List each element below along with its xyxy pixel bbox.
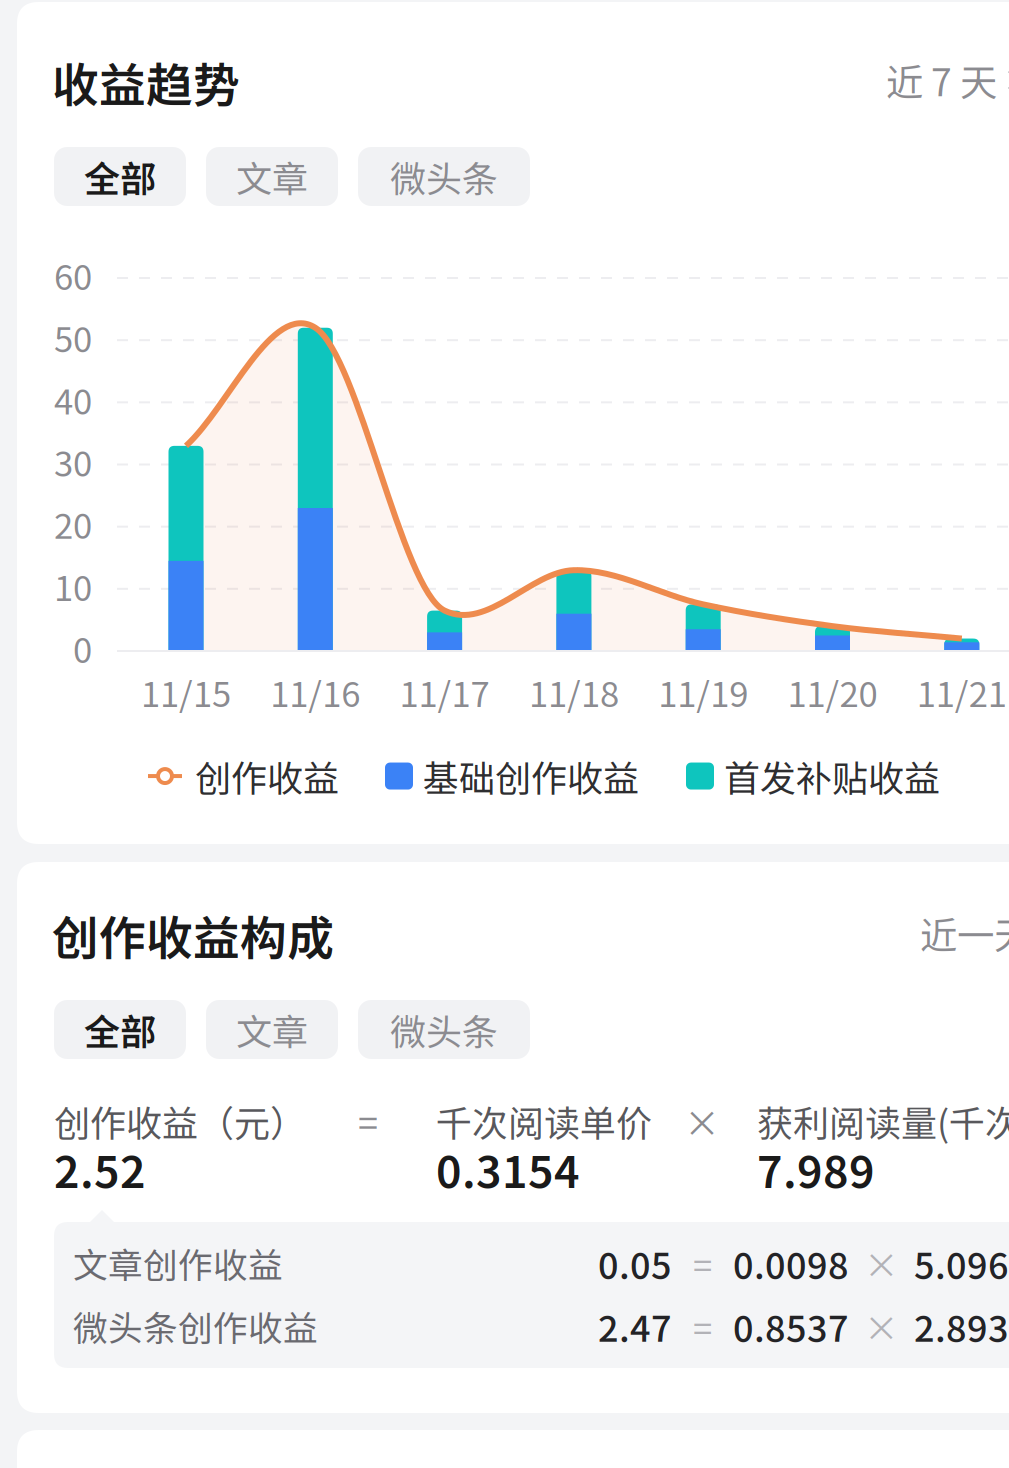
staticText: 收益趋势 bbox=[52, 48, 240, 116]
staticText: 文章 bbox=[236, 1003, 308, 1055]
staticText: 微头条 bbox=[390, 150, 498, 202]
staticText: 40 bbox=[54, 374, 92, 424]
staticText: 11/15 bbox=[141, 667, 231, 717]
button[interactable]: 近 7 天 bbox=[886, 53, 1009, 107]
button[interactable]: 近一天 bbox=[920, 906, 1009, 960]
staticText: 创作收益（元） bbox=[54, 1095, 306, 1147]
staticText: 基础创作收益 bbox=[423, 750, 639, 802]
staticText: 7.989 bbox=[757, 1137, 875, 1201]
staticText: 60 bbox=[54, 250, 92, 300]
staticText: 0 bbox=[73, 623, 92, 673]
staticText: × bbox=[864, 1238, 899, 1288]
staticText: 11/17 bbox=[400, 667, 490, 717]
staticText: 文章创作收益 bbox=[73, 1238, 283, 1288]
staticText: 2.893 bbox=[914, 1300, 1009, 1352]
staticText: 全部 bbox=[84, 1003, 156, 1055]
staticText: 5.096 bbox=[914, 1237, 1009, 1289]
staticText: 千次阅读单价 bbox=[436, 1095, 652, 1147]
staticText: 50 bbox=[54, 312, 92, 362]
staticText: 近一天 bbox=[920, 906, 1009, 960]
staticText: 11/16 bbox=[270, 667, 360, 717]
staticText: 首发补贴收益 bbox=[724, 750, 940, 802]
staticText: = bbox=[358, 1095, 378, 1147]
staticText: 全部 bbox=[84, 150, 156, 202]
staticText: 11/19 bbox=[658, 667, 748, 717]
staticText: 创作收益 bbox=[195, 750, 339, 802]
staticText: 11/18 bbox=[529, 667, 619, 717]
staticText: 11/20 bbox=[787, 667, 877, 717]
button[interactable]: 全部 bbox=[54, 147, 186, 206]
staticText: = bbox=[693, 1238, 712, 1288]
staticText: 文章 bbox=[236, 150, 308, 202]
staticText: 微头条 bbox=[390, 1003, 498, 1055]
button[interactable]: 全部 bbox=[54, 1000, 186, 1059]
staticText: 近 7 天 bbox=[886, 53, 997, 107]
staticText: 2.47 bbox=[598, 1300, 672, 1352]
staticText: 11/21 bbox=[917, 667, 1007, 717]
staticText: × bbox=[864, 1301, 899, 1351]
button[interactable]: 微头条 bbox=[358, 1000, 530, 1059]
staticText: 创作收益构成 bbox=[52, 901, 334, 969]
staticText: 获利阅读量(千次) bbox=[757, 1095, 1009, 1147]
staticText: 20 bbox=[54, 499, 92, 549]
staticText: 0.0098 bbox=[733, 1237, 849, 1289]
button[interactable]: 微头条 bbox=[358, 147, 530, 206]
staticText: 微头条创作收益 bbox=[73, 1301, 318, 1351]
staticText: 0.8537 bbox=[733, 1300, 849, 1352]
staticText: × bbox=[684, 1095, 720, 1147]
staticText: 10 bbox=[54, 561, 92, 611]
staticText: 0.05 bbox=[598, 1237, 672, 1289]
button[interactable]: 文章 bbox=[206, 1000, 338, 1059]
staticText: 2.52 bbox=[54, 1137, 146, 1201]
button[interactable]: 文章 bbox=[206, 147, 338, 206]
staticText: 30 bbox=[54, 436, 92, 487]
staticText: = bbox=[693, 1301, 712, 1351]
staticText: 0.3154 bbox=[436, 1137, 580, 1201]
